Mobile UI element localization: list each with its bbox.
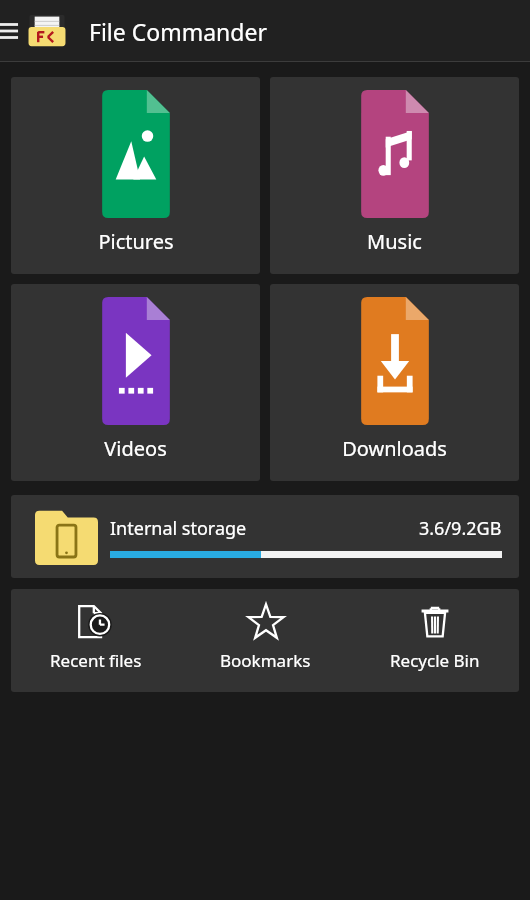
staticText: Music — [367, 228, 422, 255]
staticText: File Commander — [89, 16, 267, 47]
staticText: Bookmarks — [220, 649, 311, 672]
staticText: 3.6/9.2GB — [419, 516, 502, 541]
button[interactable]: Recycle Bin — [350, 601, 519, 672]
button[interactable]: Recent files — [11, 601, 181, 672]
button[interactable]: Open navigation drawer — [0, 0, 22, 62]
button[interactable]: Videos — [11, 284, 260, 481]
staticText: Recycle Bin — [390, 649, 480, 672]
button[interactable]: Music — [270, 77, 519, 274]
button[interactable]: Pictures — [11, 77, 260, 274]
staticText: Videos — [104, 435, 167, 462]
staticText: Pictures — [98, 228, 174, 255]
button[interactable]: Downloads — [270, 284, 519, 481]
staticText: Recent files — [50, 649, 142, 672]
staticText: Internal storage — [110, 516, 247, 541]
button[interactable]: Bookmarks — [181, 601, 350, 672]
button[interactable]: Internal storage — [11, 495, 519, 578]
staticText: Downloads — [342, 435, 447, 462]
